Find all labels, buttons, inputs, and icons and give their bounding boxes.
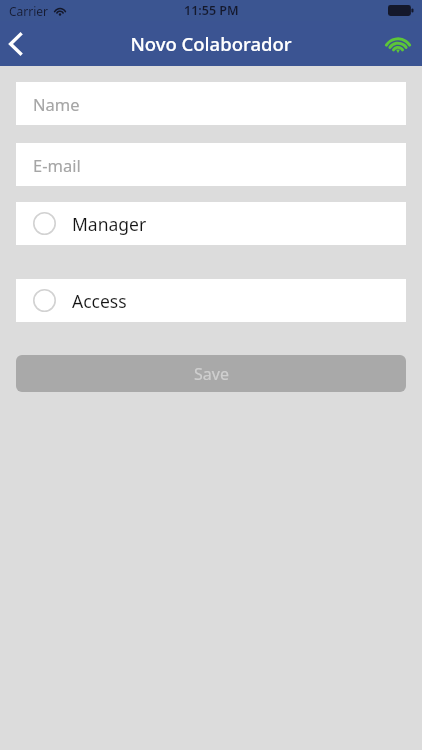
button[interactable]: Name	[16, 82, 406, 125]
staticText: 11:55 PM	[184, 2, 239, 19]
staticText: Manager	[72, 212, 147, 236]
staticText: E-mail	[33, 154, 81, 176]
staticText: Carrier	[9, 3, 49, 19]
button[interactable]: Access	[16, 279, 406, 322]
button[interactable]: Save	[16, 355, 406, 392]
button[interactable]: Manager	[16, 202, 406, 245]
staticText: Novo Colaborador	[130, 31, 292, 56]
button[interactable]: Back	[0, 22, 44, 66]
button[interactable]: E-mail	[16, 143, 406, 186]
staticText: Save	[194, 363, 229, 385]
button[interactable]: Wi-Fi status	[378, 22, 422, 66]
staticText: Name	[33, 93, 80, 115]
staticText: Access	[72, 289, 127, 313]
